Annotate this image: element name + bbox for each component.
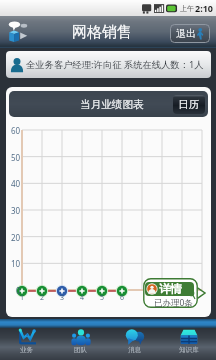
staticText: 全业务客户经理:许向征 系统在线人数：1人 xyxy=(26,58,204,71)
staticText: 60 xyxy=(11,125,21,136)
staticText: 已办理0条 xyxy=(154,297,193,308)
button[interactable]: 全业务客户经理:许向征 系统在线人数：1人 xyxy=(6,51,211,78)
staticText: 退出 xyxy=(176,27,196,40)
staticText: 40 xyxy=(11,178,21,189)
staticText: 30 xyxy=(11,205,21,216)
staticText: 3 xyxy=(60,293,65,303)
staticText: 详情 xyxy=(159,282,182,296)
button[interactable]: 知识库 xyxy=(162,328,216,360)
staticText: 4 xyxy=(80,293,85,303)
button[interactable]: 消息 xyxy=(108,328,162,360)
staticText: 0 xyxy=(16,285,21,296)
staticText: 6 xyxy=(120,293,125,303)
button[interactable]: 团队 xyxy=(54,328,108,360)
button[interactable]: 详情 xyxy=(143,278,205,308)
staticText: 2:10 xyxy=(195,2,213,14)
staticText: 20 xyxy=(11,232,21,243)
button[interactable]: 退出 xyxy=(170,24,210,43)
staticText: 1 xyxy=(20,293,25,303)
button[interactable]: 日历 xyxy=(173,95,205,114)
staticText: 当月业绩图表 xyxy=(80,98,144,111)
staticText: 上午 xyxy=(180,4,194,13)
staticText: 知识库 xyxy=(179,346,199,354)
staticText: 5 xyxy=(100,293,105,303)
staticText: 2 xyxy=(40,293,45,303)
staticText: 10 xyxy=(11,258,21,269)
staticText: 网格销售 xyxy=(72,23,132,42)
staticText: 业务 xyxy=(20,346,34,354)
button[interactable]: 业务 xyxy=(0,328,54,360)
staticText: 日历 xyxy=(178,98,200,111)
staticText: 消息 xyxy=(128,346,142,354)
staticText: 团队 xyxy=(74,346,88,354)
staticText: 50 xyxy=(11,152,21,163)
